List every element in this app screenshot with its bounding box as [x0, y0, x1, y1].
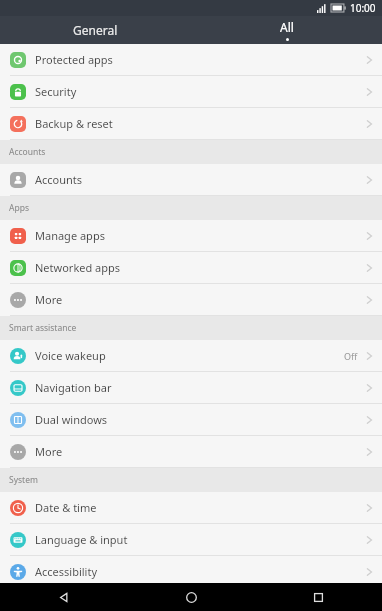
staticText: More: [35, 444, 63, 459]
button[interactable]: Backup & reset: [0, 108, 382, 140]
button[interactable]: Accounts: [0, 164, 382, 196]
button[interactable]: Language & input: [0, 524, 382, 556]
staticText: Off: [344, 350, 358, 362]
button[interactable]: More: [0, 284, 382, 316]
button[interactable]: Dual windows: [0, 404, 382, 436]
staticText: General: [73, 22, 118, 38]
button[interactable]: Home: [128, 583, 255, 611]
button[interactable]: Manage apps: [0, 220, 382, 252]
staticText: Navigation bar: [35, 380, 112, 395]
staticText: Smart assistance: [9, 322, 77, 334]
staticText: Voice wakeup: [35, 348, 106, 363]
button[interactable]: Protected apps: [0, 44, 382, 76]
button[interactable]: Security: [0, 76, 382, 108]
staticText: Accounts: [35, 172, 83, 187]
button[interactable]: Back: [0, 583, 128, 611]
button[interactable]: All: [191, 16, 382, 44]
staticText: Accounts: [9, 146, 46, 158]
button[interactable]: Accessibility: [0, 556, 382, 583]
staticText: Networked apps: [35, 260, 121, 275]
staticText: System: [9, 474, 38, 486]
staticText: 10:00: [350, 1, 376, 15]
staticText: Language & input: [35, 532, 128, 547]
staticText: All: [280, 19, 294, 35]
button[interactable]: General: [0, 16, 191, 44]
staticText: Accessibility: [35, 564, 98, 579]
staticText: Manage apps: [35, 228, 105, 243]
staticText: Dual windows: [35, 412, 108, 427]
button[interactable]: Recent apps: [255, 583, 382, 611]
button[interactable]: Voice wakeup: [0, 340, 382, 372]
staticText: Apps: [9, 202, 29, 214]
staticText: Date & time: [35, 500, 97, 515]
button[interactable]: Navigation bar: [0, 372, 382, 404]
staticText: More: [35, 292, 63, 307]
button[interactable]: Date & time: [0, 492, 382, 524]
button[interactable]: More: [0, 436, 382, 468]
staticText: Protected apps: [35, 52, 113, 67]
button[interactable]: Networked apps: [0, 252, 382, 284]
staticText: Backup & reset: [35, 116, 113, 131]
staticText: Security: [35, 84, 77, 99]
